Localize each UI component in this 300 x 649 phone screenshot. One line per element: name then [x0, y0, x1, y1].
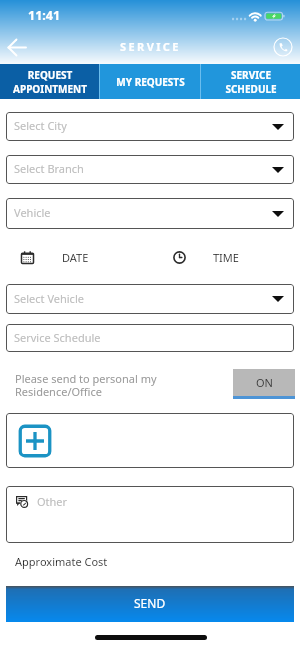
button[interactable]: Back [6, 36, 28, 58]
staticText: ON [256, 375, 273, 390]
staticText: Select Branch [14, 161, 84, 176]
staticText: TIME [213, 250, 239, 265]
button[interactable]: Vehicle [6, 198, 294, 229]
button[interactable]: Add attachment [18, 424, 52, 458]
staticText: Approximate Cost [15, 554, 108, 569]
button[interactable]: MY REQUESTS [100, 64, 200, 99]
button[interactable]: Service Schedule [6, 324, 294, 352]
staticText: Select City [14, 118, 67, 133]
button[interactable]: SERVICE SCHEDULE [201, 64, 300, 99]
staticText: SERVICE SCHEDULE [225, 68, 277, 96]
staticText: Please send to personal my Residence/Off… [15, 371, 157, 399]
button[interactable]: Other [6, 486, 294, 543]
staticText: Vehicle [14, 205, 51, 220]
staticText: SEND [134, 595, 166, 611]
staticText: SERVICE [120, 39, 181, 54]
staticText: MY REQUESTS [116, 75, 185, 89]
button[interactable]: TIME [173, 249, 216, 265]
button[interactable]: DATE [21, 249, 65, 265]
button[interactable]: Select Vehicle [6, 284, 294, 314]
button[interactable]: SEND [6, 586, 294, 622]
button[interactable]: ON [233, 369, 295, 399]
staticText: Other [37, 494, 68, 509]
button[interactable]: REQUEST APPOINTMENT [0, 64, 99, 99]
staticText: Service Schedule [14, 330, 101, 345]
staticText: 11:41 [28, 7, 61, 24]
button[interactable]: Call [273, 37, 293, 57]
button[interactable]: Select City [6, 112, 294, 141]
button[interactable]: Select Branch [6, 155, 294, 184]
staticText: REQUEST APPOINTMENT [13, 68, 87, 96]
staticText: DATE [62, 250, 89, 265]
staticText: Select Vehicle [14, 291, 84, 306]
